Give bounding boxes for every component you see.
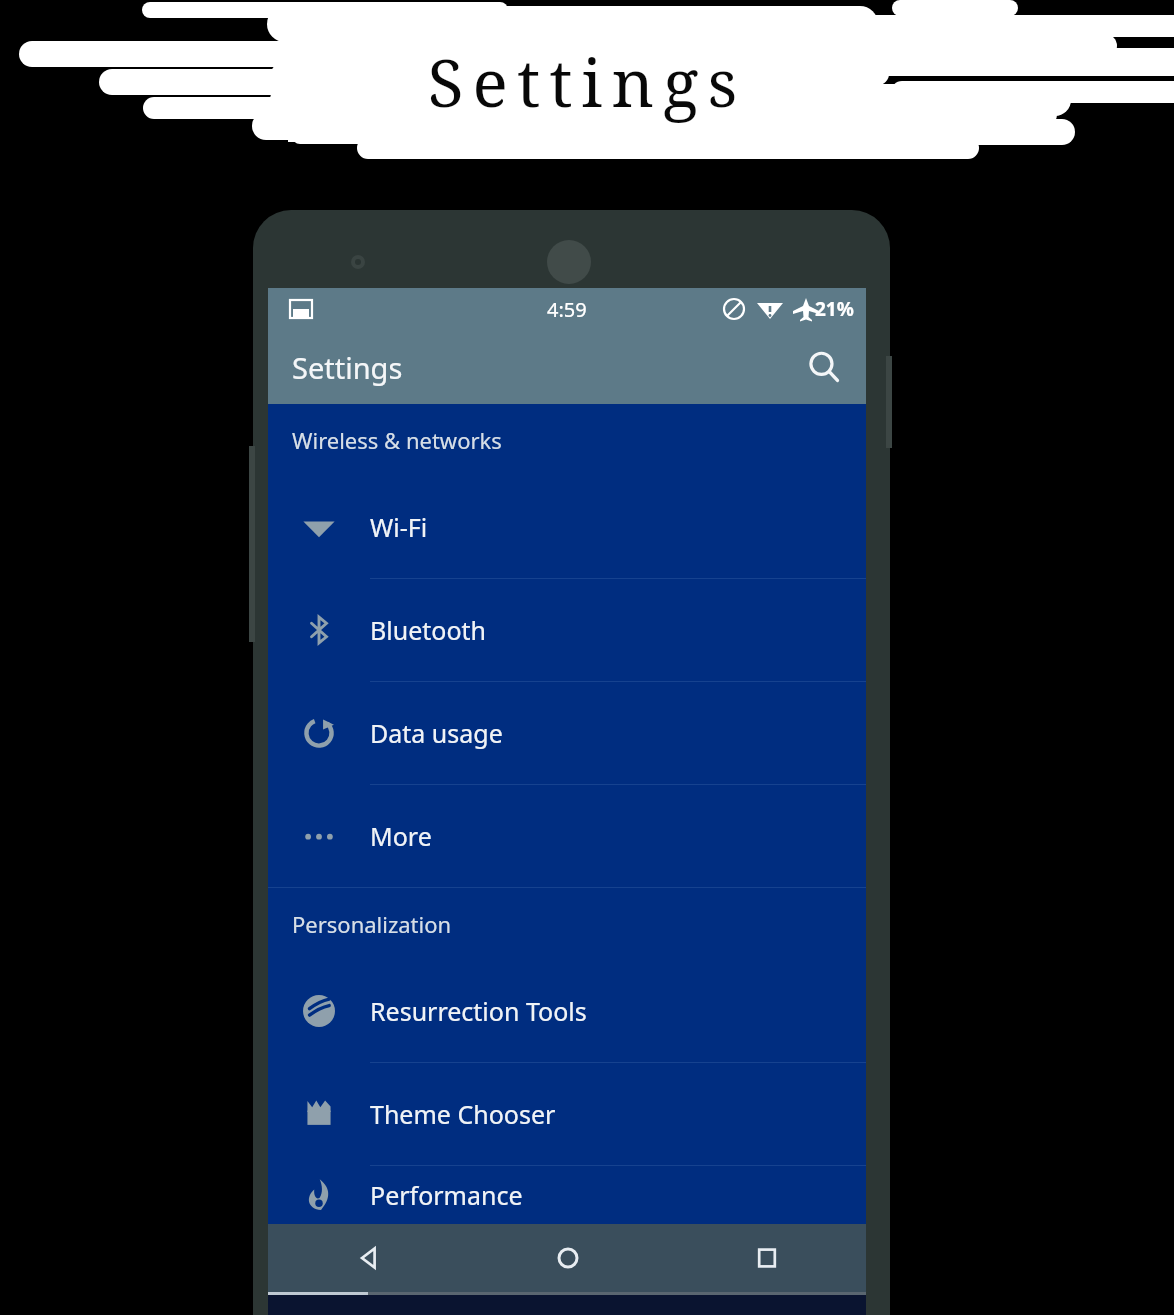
staticText: Data usage: [370, 716, 503, 750]
staticText: Settings: [0, 36, 1174, 126]
button[interactable]: Data usage: [268, 682, 866, 784]
staticText: Wireless & networks: [292, 425, 502, 455]
button[interactable]: Back: [268, 1224, 468, 1292]
button[interactable]: More: [268, 785, 866, 887]
staticText: Wi-Fi: [370, 510, 428, 544]
staticText: Settings: [292, 348, 403, 387]
staticText: Bluetooth: [370, 613, 487, 647]
button[interactable]: Resurrection Tools: [268, 960, 866, 1062]
staticText: Performance: [370, 1178, 523, 1212]
button[interactable]: Recents: [667, 1224, 866, 1292]
button[interactable]: Home: [468, 1224, 667, 1292]
button[interactable]: Search: [796, 339, 852, 395]
staticText: 4:59: [547, 296, 587, 323]
button[interactable]: Performance: [268, 1166, 866, 1224]
button[interactable]: Theme Chooser: [268, 1063, 866, 1165]
staticText: Theme Chooser: [370, 1097, 556, 1131]
staticText: More: [370, 819, 432, 853]
button[interactable]: Bluetooth: [268, 579, 866, 681]
staticText: Resurrection Tools: [370, 994, 587, 1028]
staticText: Personalization: [292, 909, 452, 939]
staticText: 21%: [815, 296, 854, 322]
button[interactable]: Wi-Fi: [268, 476, 866, 578]
